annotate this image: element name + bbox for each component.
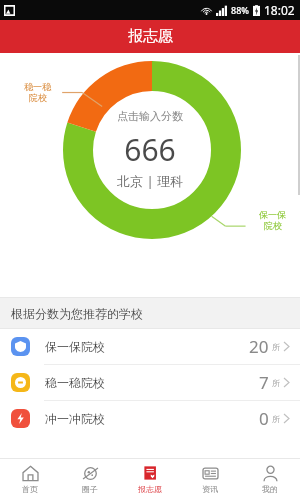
staticText: 资讯 xyxy=(202,484,218,494)
staticText: 18:02 xyxy=(264,2,295,18)
staticText: 稳一稳院校 xyxy=(45,375,105,390)
button[interactable]: 冲一冲院校 xyxy=(0,401,300,436)
staticText: 稳一稳 xyxy=(24,81,51,92)
staticText: 保一保院校 xyxy=(45,339,105,354)
staticText: 圈子 xyxy=(82,484,98,494)
staticText: 根据分数为您推荐的学校 xyxy=(11,306,143,321)
button[interactable]: 资讯 xyxy=(180,459,240,500)
staticText: 所 xyxy=(272,342,280,352)
staticText: 冲一冲院校 xyxy=(45,411,105,426)
staticText: 点击输入分数 xyxy=(117,109,183,123)
staticText: 0 xyxy=(259,407,269,430)
staticText: 7 xyxy=(259,371,269,394)
staticText: 所 xyxy=(272,378,280,388)
button[interactable]: 圈子 xyxy=(60,459,120,500)
staticText: 我的 xyxy=(262,484,278,494)
button[interactable]: 点击输入分数 xyxy=(90,109,210,190)
staticText: 首页 xyxy=(22,484,38,494)
button[interactable]: 我的 xyxy=(240,459,300,500)
staticText: 20 xyxy=(249,335,269,358)
staticText: 院校 xyxy=(264,220,282,231)
staticText: 报志愿 xyxy=(138,484,162,494)
staticText: 院校 xyxy=(29,92,47,103)
staticText: 88% xyxy=(231,4,249,16)
staticText: 保一保 xyxy=(259,209,286,220)
staticText: 报志愿 xyxy=(128,27,173,46)
button[interactable]: 保一保院校 xyxy=(0,329,300,364)
button[interactable]: 首页 xyxy=(0,459,60,500)
staticText: 所 xyxy=(272,414,280,424)
staticText: 666 xyxy=(124,129,176,170)
button[interactable]: 报志愿 xyxy=(120,459,180,500)
button[interactable]: 稳一稳院校 xyxy=(0,365,300,400)
staticText: 北京 | 理科 xyxy=(117,172,183,190)
